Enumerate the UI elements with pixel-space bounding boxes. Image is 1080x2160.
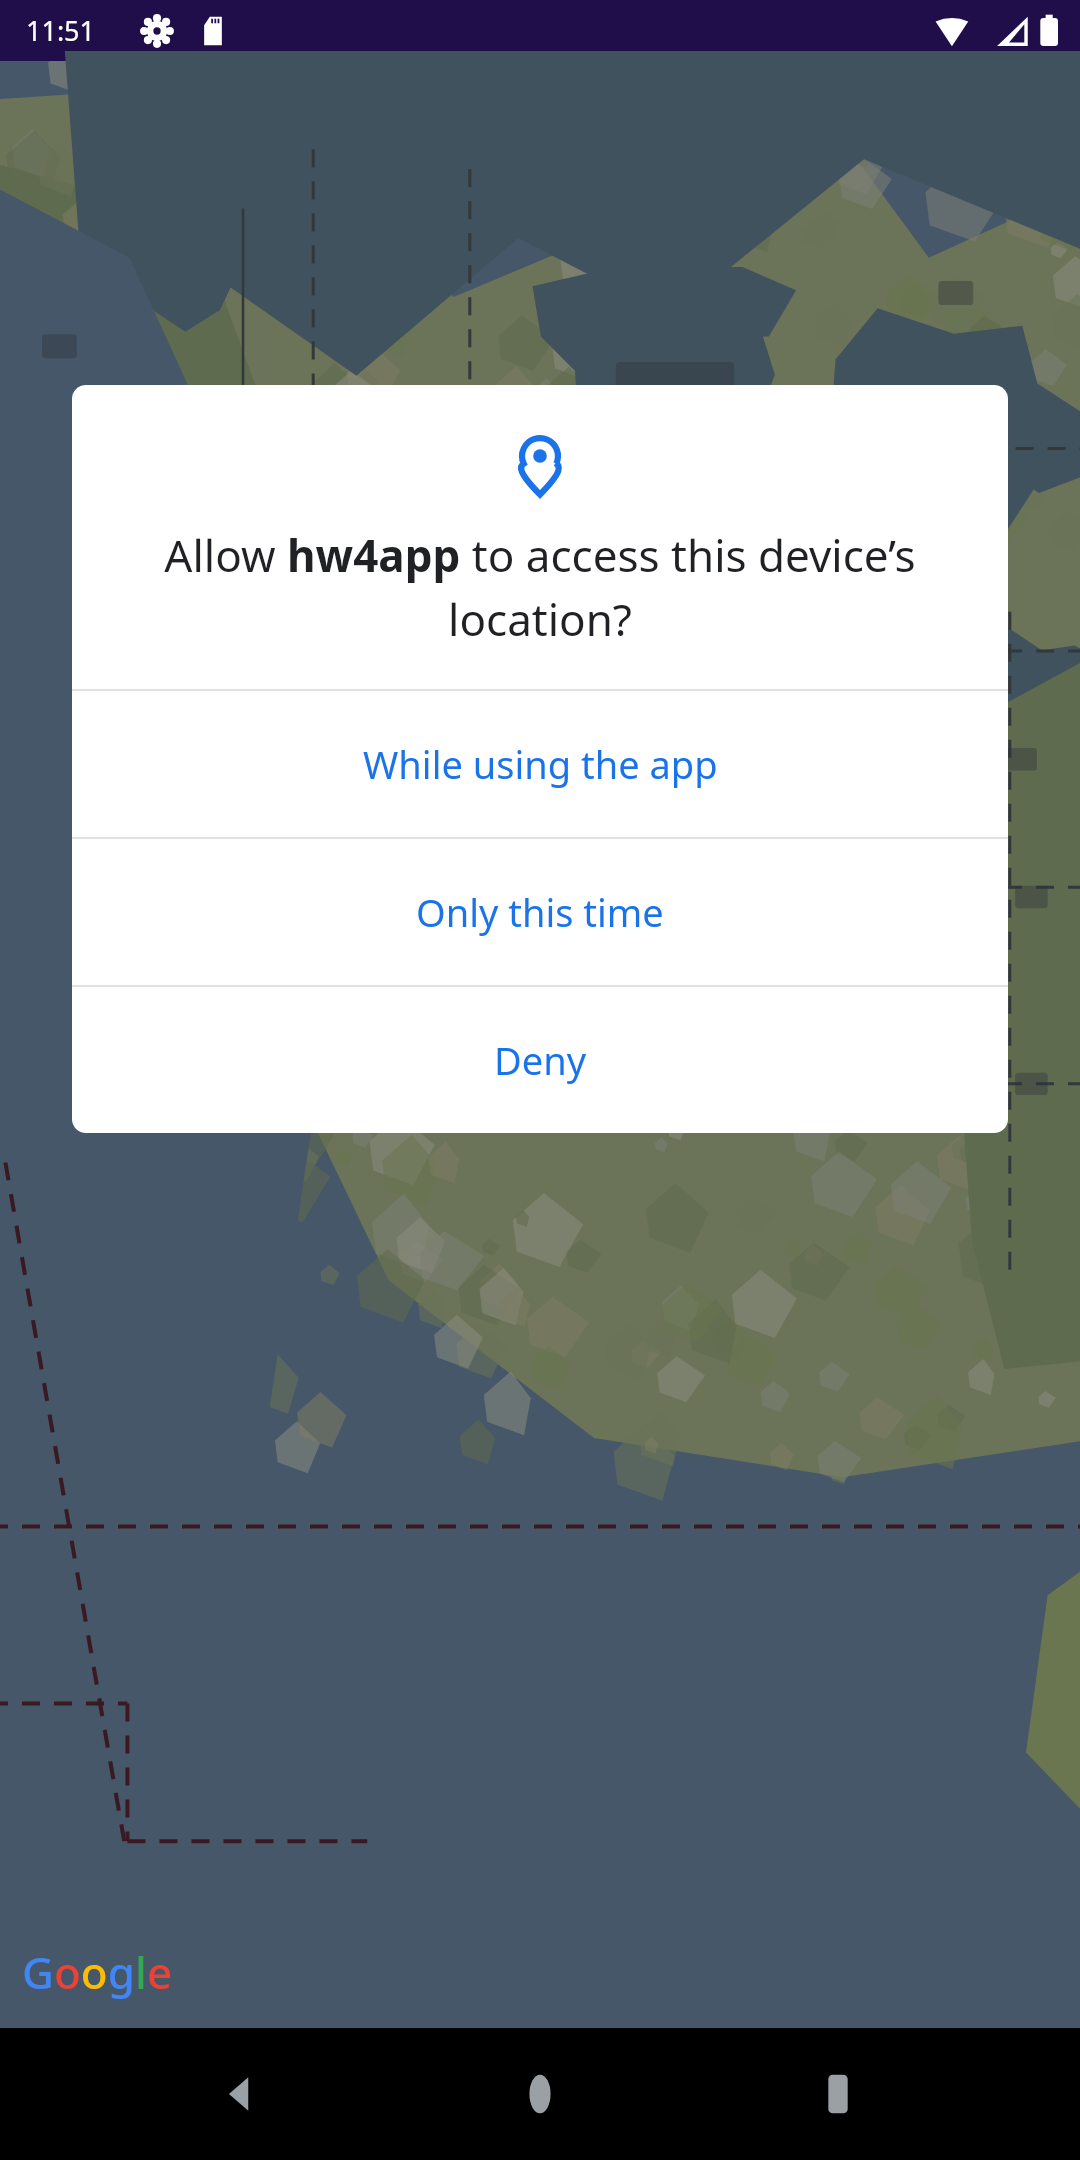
button[interactable]: Back (188, 2039, 298, 2149)
staticText: Only this time (416, 886, 664, 938)
staticText: 11:51 (26, 12, 96, 49)
button[interactable]: Only this time (72, 839, 1008, 985)
button[interactable]: Deny (72, 987, 1008, 1133)
button[interactable]: Recent apps (783, 2039, 893, 2149)
staticText: Google (22, 1942, 173, 2002)
button[interactable]: Home (485, 2039, 595, 2149)
staticText: Deny (494, 1034, 587, 1086)
staticText: Allow hw4app to access this device’s loc… (116, 525, 964, 649)
button[interactable]: While using the app (72, 691, 1008, 837)
staticText: While using the app (363, 738, 718, 790)
